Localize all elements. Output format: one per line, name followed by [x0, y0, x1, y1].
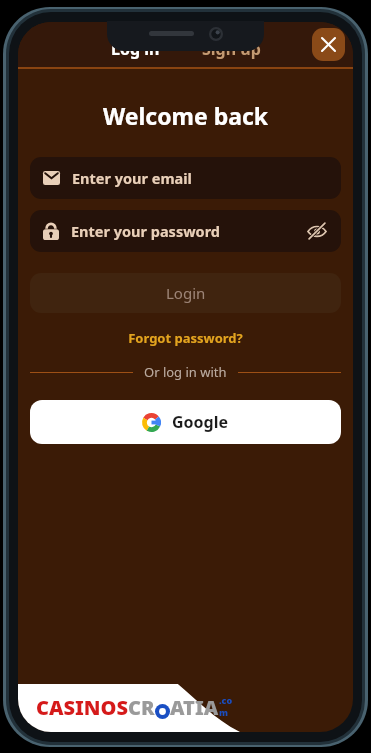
staticText: .com [219, 694, 240, 718]
staticText: Forgot password? [18, 329, 353, 347]
button[interactable]: Google [30, 400, 341, 444]
staticText: Enter your password [71, 221, 306, 241]
button[interactable]: Forgot password? [18, 326, 353, 350]
staticText: CASINOS [36, 694, 128, 721]
staticText: Welcome back [18, 100, 353, 131]
staticText: Or log in with [144, 363, 227, 381]
button[interactable]: Close [312, 28, 345, 61]
staticText: Enter your email [72, 168, 328, 188]
button[interactable]: Enter your email [30, 157, 341, 199]
staticText: ATIA [170, 694, 219, 721]
staticText: CR [128, 694, 155, 721]
button[interactable]: Toggle password visibility [306, 220, 328, 242]
staticText: Sign up [202, 38, 261, 60]
button[interactable]: Sign up [188, 34, 275, 64]
staticText: Google [172, 411, 229, 433]
staticText: Log in [111, 38, 160, 60]
button[interactable]: Enter your password [30, 210, 341, 252]
button[interactable]: Log in [97, 34, 174, 64]
staticText: Login [166, 283, 206, 303]
button[interactable]: Login [30, 273, 341, 313]
